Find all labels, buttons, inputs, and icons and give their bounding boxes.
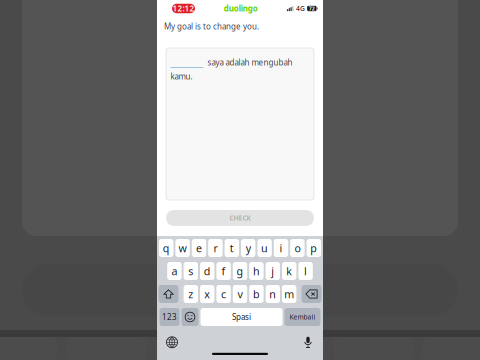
staticText: g	[236, 264, 243, 278]
staticText: z	[188, 287, 193, 301]
button[interactable]: q	[159, 239, 173, 257]
staticText: u	[261, 241, 268, 255]
button[interactable]: p	[307, 239, 321, 257]
button[interactable]: f	[216, 262, 231, 280]
button[interactable]: n	[266, 285, 280, 303]
button[interactable]: u	[257, 239, 272, 257]
button[interactable]	[181, 308, 198, 326]
staticText: l	[304, 264, 307, 278]
button[interactable]: c	[216, 285, 231, 303]
staticText: CHECK	[229, 214, 250, 222]
staticText: t	[230, 241, 234, 255]
staticText: saya adalah mengubah	[203, 57, 292, 68]
button[interactable]: CHECK	[166, 210, 314, 226]
staticText: i	[279, 241, 282, 255]
staticText: h	[253, 264, 260, 278]
button[interactable]: 123	[159, 308, 179, 326]
staticText: d	[204, 264, 211, 278]
button[interactable]: k	[282, 262, 296, 280]
button[interactable]: Switch keyboard	[166, 336, 178, 348]
staticText: p	[310, 241, 317, 255]
staticText: Spasi	[232, 312, 251, 322]
button[interactable]: s	[184, 262, 198, 280]
button[interactable]: Dictation	[302, 336, 314, 348]
staticText: x	[204, 287, 210, 301]
staticText: m	[284, 287, 294, 301]
button[interactable]: l	[298, 262, 313, 280]
button[interactable]: v	[233, 285, 247, 303]
staticText: 72	[309, 5, 315, 12]
staticText: w	[179, 241, 187, 255]
staticText: a	[171, 264, 177, 278]
staticText: v	[237, 287, 242, 301]
button[interactable]: x	[200, 285, 214, 303]
button[interactable]: t	[225, 239, 239, 257]
staticText: 123	[162, 312, 177, 322]
button[interactable]: b	[249, 285, 264, 303]
staticText: e	[196, 241, 202, 255]
staticText: j	[271, 264, 274, 278]
button[interactable]: a	[167, 262, 182, 280]
button[interactable]: y	[241, 239, 255, 257]
staticText: n	[269, 287, 276, 301]
button[interactable]: j	[266, 262, 280, 280]
button[interactable]: Kembali	[284, 308, 320, 326]
staticText: r	[213, 241, 217, 255]
button[interactable]: i	[274, 239, 288, 257]
button[interactable]: w	[175, 239, 190, 257]
staticText: b	[253, 287, 260, 301]
button[interactable]	[158, 285, 178, 303]
button[interactable]	[301, 285, 321, 303]
button[interactable]: z	[184, 285, 198, 303]
staticText: 12:12	[172, 3, 194, 14]
staticText: Kembali	[289, 313, 315, 321]
staticText: f	[222, 264, 226, 278]
button[interactable]: d	[200, 262, 214, 280]
staticText: q	[163, 241, 170, 255]
button[interactable]: h	[249, 262, 264, 280]
button[interactable]: m	[282, 285, 296, 303]
button[interactable]: e	[192, 239, 206, 257]
button[interactable]: g	[233, 262, 247, 280]
button[interactable]: r	[208, 239, 223, 257]
button[interactable]: o	[290, 239, 305, 257]
staticText: duolingo	[224, 3, 258, 14]
staticText: k	[286, 264, 292, 278]
staticText: y	[246, 241, 251, 255]
staticText: s	[188, 264, 193, 278]
staticText: My goal is to change you.	[164, 21, 259, 32]
staticText: c	[221, 287, 226, 301]
staticText: 4G	[296, 4, 305, 13]
staticText: o	[294, 241, 300, 255]
button[interactable]: Spasi	[200, 308, 282, 326]
staticText: kamu.	[170, 71, 192, 82]
